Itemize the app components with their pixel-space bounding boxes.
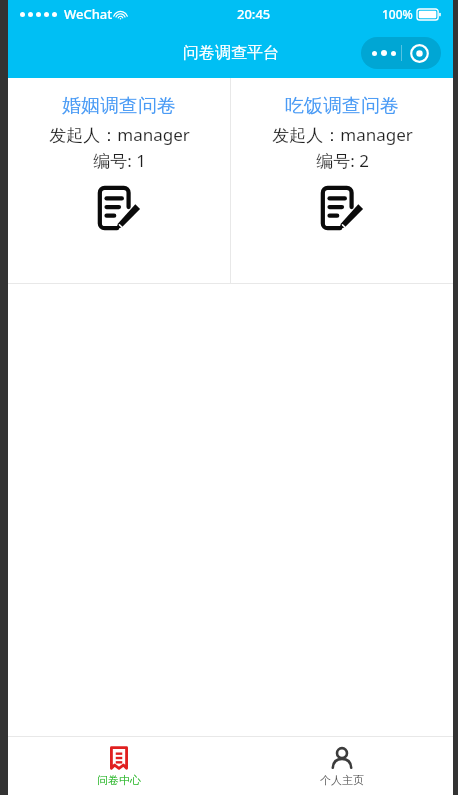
staticText: 发起人：manager <box>49 123 190 146</box>
staticText: 编号: 1 <box>93 149 146 172</box>
button[interactable]: 吃饭调查问卷 <box>231 78 453 283</box>
button[interactable]: 问卷中心 <box>8 737 230 795</box>
staticText: WeChat <box>64 5 113 23</box>
staticText: 问卷中心 <box>97 773 141 787</box>
staticText: 发起人：manager <box>272 123 413 146</box>
staticText: 问卷调查平台 <box>183 43 279 63</box>
staticText: 吃饭调查问卷 <box>285 94 399 118</box>
staticText: 婚姻调查问卷 <box>62 94 176 118</box>
staticText: 100% <box>382 6 413 22</box>
staticText: 个人主页 <box>320 773 364 787</box>
staticText: 20:45 <box>237 5 271 23</box>
button[interactable]: 婚姻调查问卷 <box>8 78 230 283</box>
button[interactable]: 个人主页 <box>230 737 453 795</box>
button[interactable]: More options <box>361 37 441 69</box>
staticText: 编号: 2 <box>316 149 369 172</box>
